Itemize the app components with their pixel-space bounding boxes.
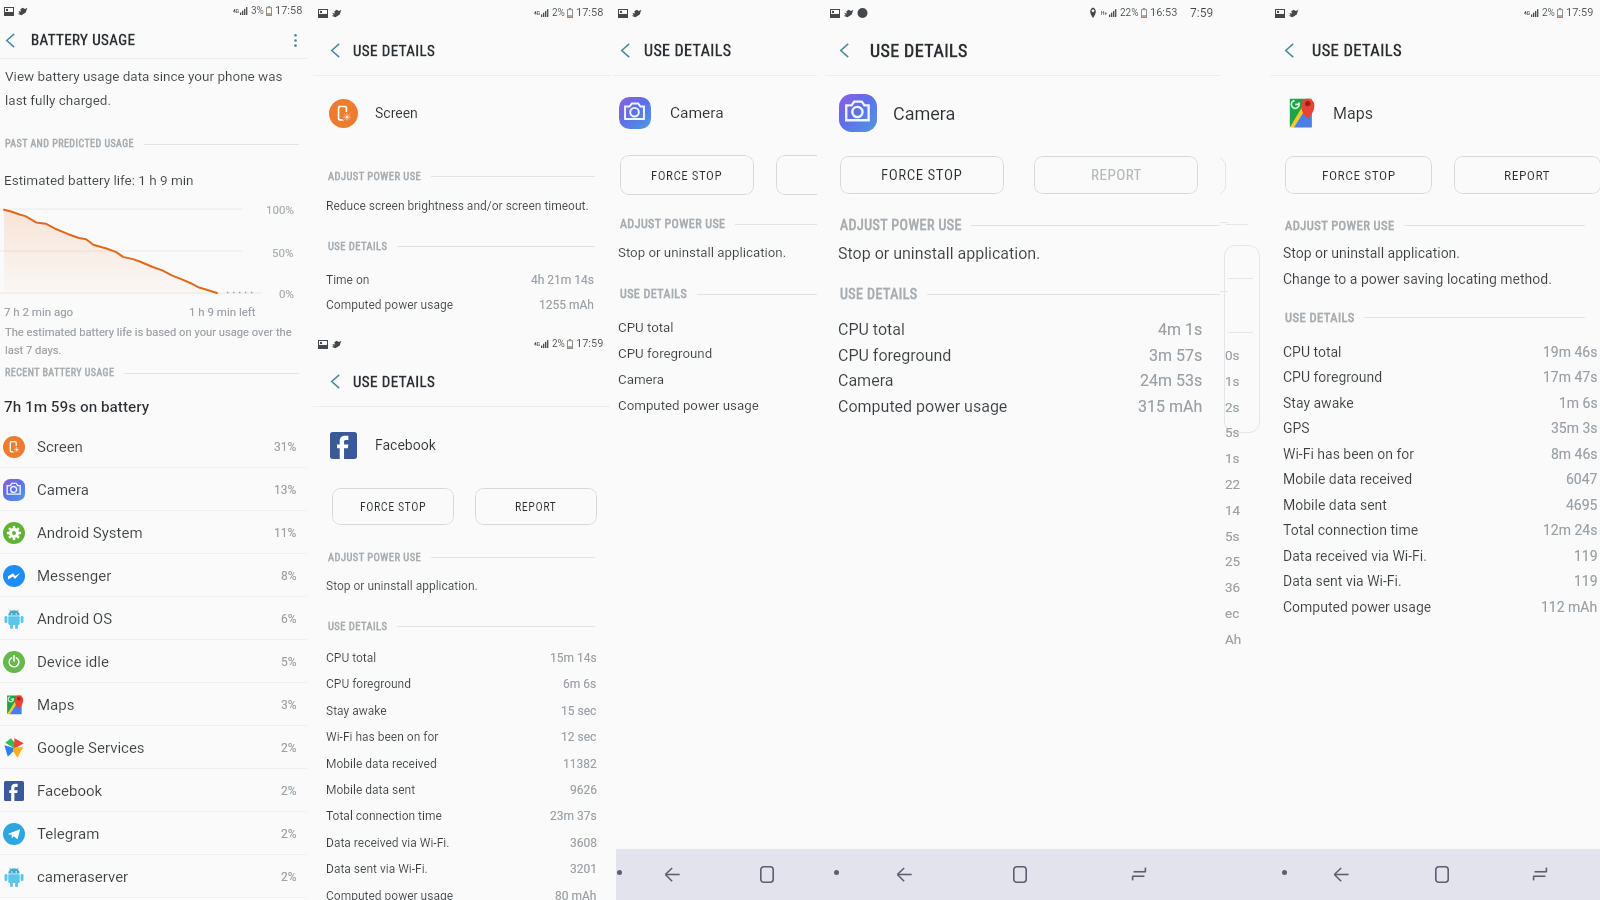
- staticText: 17:59: [1566, 6, 1594, 19]
- staticText: ADJUST POWER USE: [328, 170, 422, 182]
- staticText: 12m 24s: [1543, 522, 1598, 538]
- staticText: 6047: [1566, 471, 1598, 487]
- button[interactable]: Back: [889, 859, 919, 889]
- button[interactable]: Home: [1005, 859, 1035, 889]
- button[interactable]: Facebook: [0, 769, 307, 812]
- staticText: USE DETAILS: [1312, 41, 1402, 60]
- button[interactable]: REPORT: [475, 488, 597, 525]
- button[interactable]: REPORT: [1454, 156, 1600, 194]
- button[interactable]: Back: [1326, 859, 1356, 889]
- staticText: 7 h 2 min ago: [4, 305, 74, 318]
- staticText: Wi-Fi has been on for: [1283, 446, 1415, 462]
- staticText: ec: [1225, 605, 1240, 621]
- staticText: Time on: [326, 273, 370, 287]
- button[interactable]: Menu: [823, 859, 849, 885]
- staticText: Stay awake: [1283, 395, 1354, 411]
- button[interactable]: FORCE STOP: [1285, 156, 1432, 194]
- staticText: Total connection time: [326, 809, 442, 823]
- staticText: The estimated battery life is based on y…: [5, 326, 292, 357]
- staticText: FORCE STOP: [360, 500, 427, 514]
- staticText: 11382: [563, 757, 597, 771]
- staticText: Data received via Wi-Fi.: [326, 836, 450, 850]
- staticText: cameraserver: [37, 868, 129, 886]
- staticText: ADJUST POWER USE: [328, 551, 422, 563]
- staticText: Ah: [1225, 631, 1242, 647]
- staticText: 0s: [1225, 347, 1240, 363]
- staticText: Screen: [375, 105, 418, 121]
- button[interactable]: Navigate up: [322, 356, 348, 407]
- button[interactable]: REPORT: [776, 155, 817, 195]
- staticText: 4G: [534, 10, 540, 16]
- button[interactable]: Screen: [0, 425, 307, 468]
- staticText: Mobile data sent: [326, 783, 416, 797]
- button[interactable]: FORCE STOP: [840, 156, 1004, 194]
- button[interactable]: Messenger: [0, 554, 307, 597]
- staticText: CPU total: [326, 651, 377, 665]
- staticText: 6m 6s: [563, 677, 597, 691]
- staticText: PAST AND PREDICTED USAGE: [5, 138, 135, 150]
- staticText: USE DETAILS: [644, 41, 732, 60]
- staticText: CPU foreground: [618, 346, 713, 362]
- staticText: USE DETAILS: [353, 373, 436, 391]
- button[interactable]: Device idle: [0, 640, 307, 683]
- button[interactable]: Android OS: [0, 597, 307, 640]
- staticText: Computed power usage: [618, 398, 759, 414]
- button[interactable]: Menu: [1271, 859, 1297, 885]
- staticText: 1s: [1225, 450, 1240, 466]
- button[interactable]: More options: [283, 21, 307, 59]
- staticText: Camera: [893, 103, 956, 124]
- staticText: 31%: [274, 440, 297, 454]
- button[interactable]: Menu: [606, 859, 632, 885]
- staticText: Facebook: [37, 782, 103, 800]
- staticText: 24m 53s: [1140, 371, 1203, 390]
- staticText: 1s: [1225, 373, 1240, 389]
- staticText: BATTERY USAGE: [31, 31, 136, 49]
- button[interactable]: Google Services: [0, 726, 307, 769]
- staticText: 112 mAh: [1541, 599, 1598, 615]
- staticText: 2%: [552, 338, 565, 350]
- staticText: Mobile data received: [326, 757, 437, 771]
- button[interactable]: cameraserver: [0, 855, 307, 898]
- staticText: FORCE STOP: [1322, 167, 1396, 183]
- button[interactable]: Android System: [0, 511, 307, 554]
- button[interactable]: Recent apps: [1525, 859, 1555, 889]
- button[interactable]: Navigate up: [0, 21, 23, 59]
- staticText: REPORT: [1091, 166, 1142, 184]
- button[interactable]: FORCE STOP: [620, 155, 754, 195]
- staticText: 3201: [570, 862, 597, 876]
- staticText: RECENT BATTERY USAGE: [5, 367, 115, 379]
- button[interactable]: Home: [1427, 859, 1457, 889]
- staticText: 4G: [1524, 10, 1530, 16]
- staticText: USE DETAILS: [840, 286, 918, 302]
- button[interactable]: Back: [657, 859, 687, 889]
- button[interactable]: Navigate up: [1276, 25, 1302, 76]
- staticText: 119: [1574, 573, 1598, 589]
- button[interactable]: FORCE STOP: [332, 488, 454, 525]
- staticText: 2%: [281, 741, 297, 755]
- button[interactable]: Navigate up: [613, 25, 638, 76]
- staticText: H+: [1101, 10, 1108, 16]
- staticText: 22%: [1120, 7, 1139, 19]
- button[interactable]: Navigate up: [831, 25, 857, 76]
- staticText: FORCE STOP: [881, 166, 963, 184]
- staticText: REPORT: [1504, 167, 1551, 183]
- staticText: CPU foreground: [838, 346, 952, 365]
- button[interactable]: Camera: [0, 468, 307, 511]
- button[interactable]: Navigate up: [322, 25, 348, 76]
- staticText: 80 mAh: [555, 889, 597, 900]
- button[interactable]: Telegram: [0, 812, 307, 855]
- staticText: 3m 57s: [1149, 346, 1203, 365]
- staticText: REPORT: [515, 500, 557, 514]
- staticText: Camera: [37, 481, 89, 499]
- staticText: 3608: [570, 836, 597, 850]
- staticText: Data sent via Wi-Fi.: [326, 862, 428, 876]
- staticText: Google Services: [37, 739, 145, 757]
- staticText: 2%: [281, 784, 297, 798]
- button[interactable]: Recent apps: [1124, 859, 1154, 889]
- button[interactable]: Maps: [0, 683, 307, 726]
- button[interactable]: REPORT: [1034, 156, 1198, 194]
- staticText: Stay awake: [326, 704, 387, 718]
- button[interactable]: Home: [752, 859, 782, 889]
- staticText: 1m 6s: [1559, 395, 1598, 411]
- staticText: 4m 1s: [1158, 320, 1203, 339]
